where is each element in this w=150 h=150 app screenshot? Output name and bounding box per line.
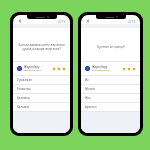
staticText: Иә <box>85 78 89 82</box>
button[interactable]: Жауап беру <box>85 62 136 75</box>
staticText: 2/15 <box>128 19 136 24</box>
staticText: Жоқ <box>85 96 91 100</box>
staticText: Ғалаылма <box>17 87 31 91</box>
button[interactable]: Жоқ <box>81 94 140 102</box>
button[interactable]: Ғалаылма <box>13 85 70 93</box>
staticText: Қалағанд <box>17 96 30 100</box>
button[interactable]: Жылай <box>81 85 140 93</box>
button[interactable]: Тұзқалаған <box>13 76 70 84</box>
staticText: Жауапбергенге <box>24 69 42 72</box>
button[interactable]: Араспан <box>81 103 140 111</box>
staticText: Жауап беру <box>24 65 40 69</box>
button[interactable]: Back <box>85 18 91 24</box>
button[interactable]: Back <box>17 18 23 24</box>
button[interactable]: Иә <box>81 76 140 84</box>
button[interactable]: Қалағанғ <box>13 103 70 111</box>
staticText: Бұлттан ән қалқы? <box>97 45 125 49</box>
staticText: Жауапбергенге <box>92 69 110 72</box>
staticText: Қолым адамға қатты жасалған құмақ шақыра… <box>18 43 65 51</box>
staticText: Жауап беру <box>92 65 108 69</box>
staticText: Қалағанғ <box>17 105 30 109</box>
staticText: Араспан <box>85 105 97 109</box>
staticText: 2/15 <box>58 19 66 24</box>
button[interactable]: Қалағанд <box>13 94 70 102</box>
button[interactable]: Жауап беру <box>17 62 66 75</box>
staticText: Тұзқалаған <box>17 78 33 82</box>
staticText: Жылай <box>85 87 95 91</box>
